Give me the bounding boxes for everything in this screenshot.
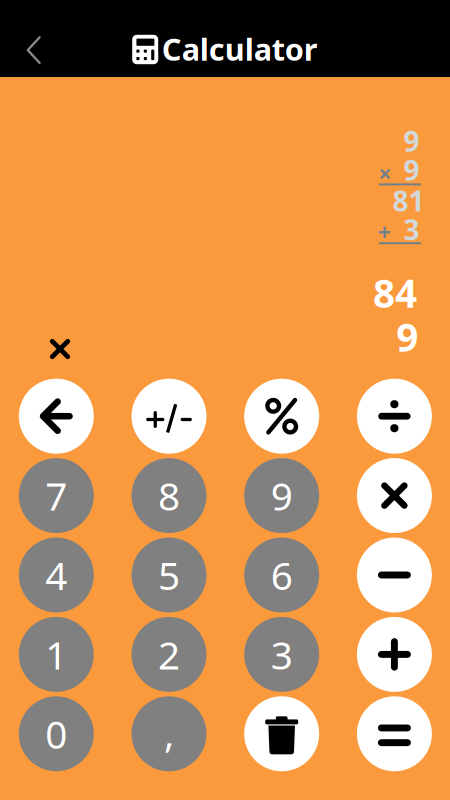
- button[interactable]: 0: [19, 696, 94, 771]
- staticText: 3: [271, 629, 293, 680]
- staticText: 81: [393, 182, 425, 219]
- staticText: 6: [271, 549, 293, 601]
- button[interactable]: Plus: [357, 617, 432, 692]
- staticText: ×: [379, 158, 392, 188]
- button[interactable]: 7: [19, 458, 94, 533]
- button[interactable]: Back: [6, 20, 60, 77]
- staticText: +: [378, 217, 391, 247]
- staticText: 9: [271, 470, 293, 521]
- staticText: 0: [45, 708, 67, 759]
- button[interactable]: Equals: [357, 696, 432, 771]
- staticText: 9: [404, 151, 420, 189]
- button[interactable]: 5: [131, 537, 206, 612]
- button[interactable]: 2: [131, 617, 206, 692]
- staticText: 8: [158, 470, 180, 521]
- button[interactable]: Minus: [357, 537, 432, 612]
- button[interactable]: 9: [244, 458, 319, 533]
- button[interactable]: Percent: [244, 379, 319, 454]
- staticText: Calculator: [162, 28, 318, 69]
- staticText: 3: [404, 211, 420, 248]
- button[interactable]: 6: [244, 537, 319, 612]
- button[interactable]: Divide: [357, 379, 432, 454]
- button[interactable]: ,: [131, 696, 206, 771]
- button[interactable]: 4: [19, 537, 94, 612]
- staticText: 84: [373, 267, 417, 318]
- staticText: ,: [164, 707, 174, 758]
- staticText: 7: [45, 470, 67, 521]
- button[interactable]: 8: [131, 458, 206, 533]
- button[interactable]: Delete: [244, 696, 319, 771]
- button[interactable]: 3: [244, 617, 319, 692]
- staticText: 9: [404, 122, 420, 159]
- staticText: 5: [158, 549, 180, 601]
- button[interactable]: Plus minus: [131, 379, 206, 454]
- button[interactable]: Backspace: [19, 379, 94, 454]
- staticText: 2: [158, 629, 180, 680]
- button[interactable]: Clear: [33, 326, 87, 372]
- staticText: 4: [45, 549, 67, 601]
- button[interactable]: Multiply: [357, 458, 432, 533]
- staticText: 9: [396, 311, 418, 362]
- button[interactable]: 1: [19, 617, 94, 692]
- staticText: 1: [45, 629, 67, 680]
